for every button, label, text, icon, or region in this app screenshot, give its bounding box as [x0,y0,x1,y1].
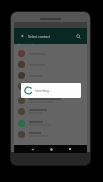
button[interactable] [14,70,87,81]
button[interactable]: Back [28,145,36,153]
button[interactable] [14,129,87,141]
button[interactable]: Search [73,28,84,44]
staticText: Select contact [28,34,51,39]
button[interactable] [14,59,87,70]
button[interactable] [14,95,87,107]
button[interactable] [14,81,87,92]
button[interactable]: Recents [66,145,74,153]
button[interactable] [14,118,87,130]
button[interactable] [14,48,87,59]
button[interactable]: Back [16,28,27,44]
staticText: Frequently contacted [18,43,51,47]
button[interactable]: Home [47,145,55,153]
button[interactable] [14,106,87,118]
staticText: Searching… [35,89,52,93]
